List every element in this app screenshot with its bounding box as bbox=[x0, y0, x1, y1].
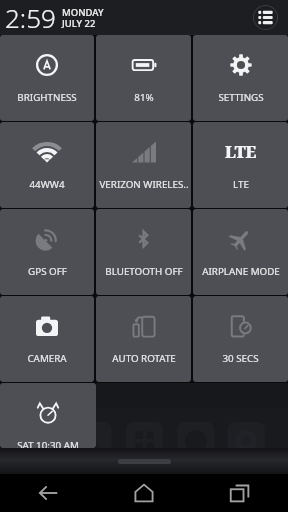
button[interactable]: GPS OFF bbox=[0, 209, 94, 295]
button[interactable]: 30 SECS bbox=[193, 296, 288, 382]
button[interactable]: 81% bbox=[96, 35, 191, 121]
staticText: 44WW4 bbox=[29, 178, 65, 191]
button[interactable]: CAMERA bbox=[0, 296, 94, 382]
staticText: BLUETOOTH OFF bbox=[105, 265, 183, 278]
button[interactable]: Quick settings list bbox=[253, 5, 278, 30]
staticText: VERIZON WIRELES.. bbox=[99, 178, 189, 191]
staticText: BRIGHTNESS bbox=[17, 91, 77, 104]
staticText: 81% bbox=[134, 91, 154, 104]
button[interactable]: LTE bbox=[193, 122, 288, 208]
staticText: LTE bbox=[225, 141, 257, 163]
button[interactable]: Home bbox=[96, 474, 192, 512]
staticText: SETTINGS bbox=[218, 91, 264, 104]
staticText: AIRPLANE MODE bbox=[202, 265, 280, 278]
staticText: LTE bbox=[233, 178, 249, 191]
staticText: 2:59 bbox=[5, 0, 56, 35]
button[interactable]: BLUETOOTH OFF bbox=[96, 209, 191, 295]
staticText: JULY 22 bbox=[62, 17, 96, 30]
button[interactable]: SAT 10:30 AM bbox=[0, 383, 96, 448]
staticText: GPS OFF bbox=[28, 265, 67, 278]
staticText: AUTO ROTATE bbox=[112, 352, 176, 365]
staticText: MONDAY bbox=[62, 6, 104, 19]
staticText: CAMERA bbox=[27, 352, 67, 365]
button[interactable]: BRIGHTNESS bbox=[0, 35, 94, 121]
button[interactable]: SETTINGS bbox=[193, 35, 288, 121]
button[interactable]: AUTO ROTATE bbox=[96, 296, 191, 382]
button[interactable]: VERIZON WIRELES.. bbox=[96, 122, 191, 208]
button[interactable]: 44WW4 bbox=[0, 122, 94, 208]
staticText: SAT 10:30 AM bbox=[17, 439, 79, 448]
button[interactable]: AIRPLANE MODE bbox=[193, 209, 288, 295]
button[interactable]: Back bbox=[0, 474, 96, 512]
staticText: 30 SECS bbox=[222, 352, 259, 365]
button[interactable]: Recent apps bbox=[192, 474, 288, 512]
